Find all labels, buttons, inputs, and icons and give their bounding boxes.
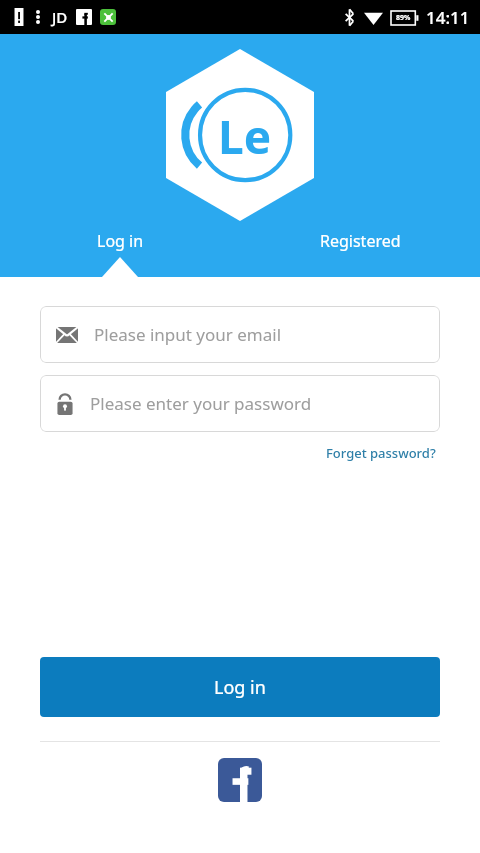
button[interactable]: Registered bbox=[240, 215, 480, 267]
button[interactable]: Log in bbox=[40, 657, 440, 717]
staticText: Please enter your password bbox=[90, 392, 312, 415]
button[interactable]: Forget password? bbox=[322, 440, 440, 466]
button[interactable]: Please enter your password bbox=[40, 375, 440, 432]
staticText: Forget password? bbox=[326, 444, 436, 462]
button[interactable]: Sign in with Facebook bbox=[218, 758, 262, 802]
staticText: Registered bbox=[320, 230, 401, 252]
staticText: Please input your email bbox=[94, 323, 282, 346]
button[interactable]: Log in bbox=[0, 215, 240, 267]
staticText: 14:11 bbox=[426, 6, 470, 29]
staticText: Log in bbox=[97, 230, 144, 252]
staticText: 89% bbox=[396, 13, 411, 23]
button[interactable]: Please input your email bbox=[40, 306, 440, 363]
staticText: Le bbox=[218, 105, 272, 168]
staticText: JD bbox=[52, 7, 68, 27]
staticText: Log in bbox=[214, 675, 266, 700]
